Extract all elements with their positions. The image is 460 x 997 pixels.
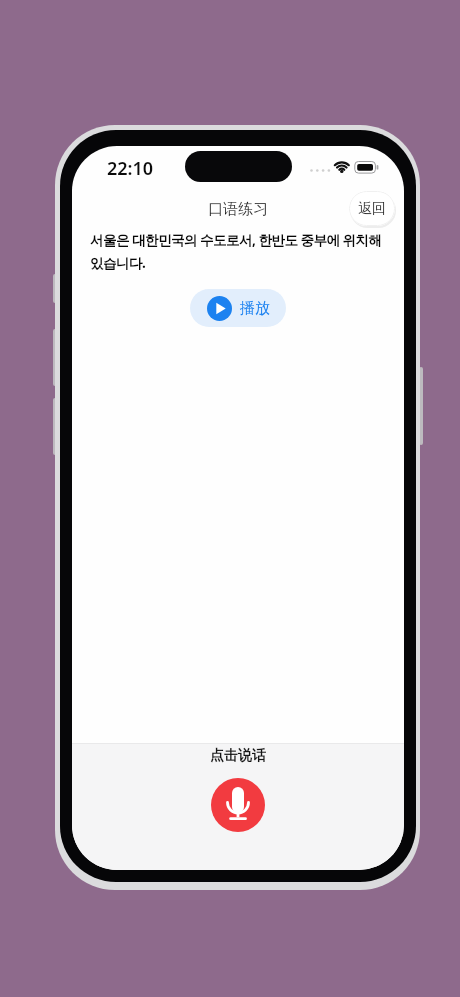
staticText: 点击说话 [72, 747, 404, 765]
button[interactable]: 返回 [349, 191, 395, 226]
button[interactable]: 播放 [190, 289, 286, 327]
staticText: 播放 [240, 299, 270, 318]
staticText: 22:10 [107, 156, 154, 181]
staticText: 서울은 대한민국의 수도로서, 한반도 중부에 위치해 있습니다. [90, 231, 382, 272]
staticText: 口语练习 [72, 200, 404, 219]
button[interactable] [211, 778, 265, 832]
staticText: 返回 [358, 200, 386, 218]
